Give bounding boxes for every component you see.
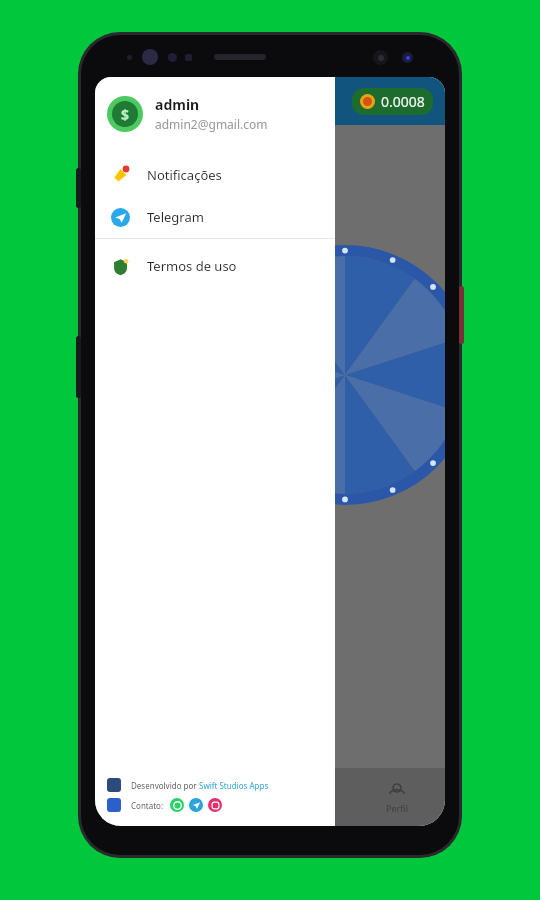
button[interactable]: Notificações [95, 154, 335, 196]
button[interactable]: $ [95, 87, 335, 140]
staticText: Telegram [147, 208, 204, 226]
staticText: admin2@gmail.com [155, 116, 268, 132]
staticText: Contato: [131, 800, 164, 811]
staticText: Perfil [386, 802, 408, 814]
button[interactable]: Perfil [349, 774, 445, 820]
button[interactable]: Telegram [95, 196, 335, 238]
button[interactable]: Contato [208, 798, 222, 812]
staticText: 0.0008 [381, 92, 425, 111]
button[interactable]: 0.0008 [352, 88, 433, 115]
button[interactable]: Termos de uso [95, 245, 335, 287]
staticText: Swift Studios Apps [199, 780, 269, 791]
button[interactable]: Contato [170, 798, 184, 812]
button[interactable]: Contato [189, 798, 203, 812]
staticText: Desenvolvido por [131, 780, 199, 791]
staticText: Termos de uso [147, 257, 237, 275]
staticText: $ [121, 105, 130, 124]
staticText: Notificações [147, 166, 222, 184]
staticText: admin [155, 95, 200, 114]
